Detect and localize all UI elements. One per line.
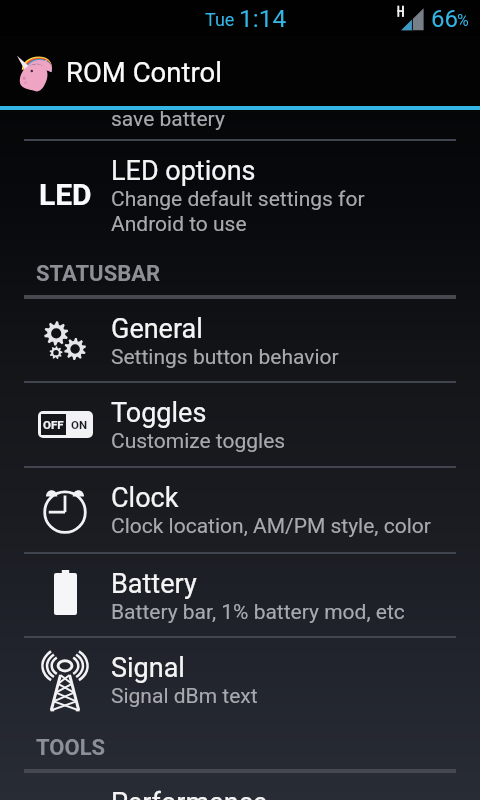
staticText: Clock location, AM/PM style, color <box>111 514 431 539</box>
staticText: OFF <box>43 418 64 431</box>
staticText: STATUSBAR <box>36 261 161 287</box>
staticText: save battery <box>111 107 225 132</box>
staticText: LED options <box>111 155 256 187</box>
other: Mobile signal <box>396 4 426 32</box>
button[interactable]: Clock <box>0 468 480 552</box>
staticText: Battery bar, 1% battery mod, etc <box>111 600 405 625</box>
staticText: Performance <box>111 787 268 800</box>
staticText: Signal <box>111 652 185 684</box>
other: App icon <box>13 51 53 91</box>
staticText: 66 <box>431 5 458 33</box>
staticText: ON <box>71 418 88 431</box>
staticText: TOOLS <box>36 735 106 761</box>
staticText: Clock <box>111 482 179 514</box>
staticText: Change default settings for <box>111 187 365 212</box>
staticText: Customize toggles <box>111 429 286 454</box>
staticText: Tue <box>205 9 235 30</box>
button[interactable]: LED options <box>0 141 480 248</box>
staticText: Signal dBm text <box>111 684 258 709</box>
staticText: Toggles <box>111 397 207 429</box>
button[interactable]: Toggles <box>0 383 480 466</box>
button[interactable]: save battery <box>0 110 480 139</box>
button[interactable]: App icon <box>0 36 480 106</box>
button[interactable]: Performance <box>0 773 480 800</box>
staticText: Settings button behavior <box>111 345 339 370</box>
button[interactable]: Signal <box>0 638 480 722</box>
staticText: Battery <box>111 568 197 600</box>
staticText: LED <box>39 177 92 212</box>
staticText: General <box>111 313 203 345</box>
staticText: ROM Control <box>66 56 222 88</box>
staticText: % <box>457 11 469 30</box>
staticText: Android to use <box>111 212 247 237</box>
staticText: 1:14 <box>239 4 287 33</box>
button[interactable]: General <box>0 299 480 381</box>
button[interactable]: Battery <box>0 554 480 636</box>
